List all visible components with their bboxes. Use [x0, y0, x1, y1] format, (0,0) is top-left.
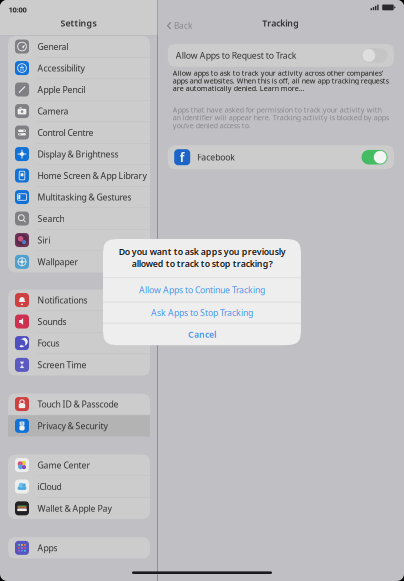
staticText: Screen Time — [37, 359, 86, 371]
staticText: Accessibility — [37, 62, 84, 74]
button[interactable]: Screen Time — [8, 354, 150, 376]
button[interactable]: Ask Apps to Stop Tracking — [103, 302, 301, 323]
staticText: Display & Brightness — [37, 148, 118, 160]
staticText: Back — [174, 20, 192, 31]
staticText: Notifications — [37, 294, 87, 306]
staticText: Siri — [37, 234, 50, 246]
staticText: Home Screen & App Library — [37, 170, 146, 181]
staticText: Control Centre — [37, 127, 93, 138]
staticText: Cancel — [188, 328, 216, 340]
button[interactable]: Search — [8, 208, 150, 230]
staticText: Tracking — [262, 17, 299, 29]
button[interactable]: Multitasking & Gestures — [8, 187, 150, 208]
staticText: Search — [37, 213, 64, 224]
button[interactable]: Sounds — [8, 311, 150, 333]
button[interactable]: Accessibility — [8, 58, 150, 79]
staticText: General — [37, 41, 68, 52]
staticText: Allow apps to ask to track your activity… — [173, 68, 389, 93]
staticText: Wallet & Apple Pay — [37, 502, 111, 514]
staticText: Privacy & Security — [37, 420, 107, 432]
staticText: Facebook — [197, 151, 235, 163]
button[interactable]: Apple Pencil — [8, 79, 150, 101]
button[interactable]: Back — [158, 16, 192, 35]
staticText: Game Center — [37, 459, 90, 471]
staticText: Camera — [37, 105, 68, 117]
button[interactable]: Notifications — [8, 290, 150, 311]
button[interactable]: Game Center — [8, 455, 150, 476]
staticText: Ask Apps to Stop Tracking — [151, 307, 253, 318]
button[interactable]: Cancel — [103, 323, 301, 345]
staticText: Apps that have asked for permission to t… — [173, 105, 389, 130]
button[interactable]: Siri — [8, 230, 150, 251]
button[interactable]: Allow Apps to Continue Tracking — [103, 278, 301, 302]
button[interactable]: Display & Brightness — [8, 144, 150, 165]
button[interactable]: Apps — [8, 537, 150, 559]
button[interactable]: Home Screen & App Library — [8, 165, 150, 187]
button[interactable]: Toggle on — [361, 150, 387, 164]
staticText: Allow Apps to Request to Track — [176, 49, 297, 61]
staticText: Apps — [37, 542, 57, 554]
button[interactable]: Control Centre — [8, 122, 150, 144]
staticText: Apple Pencil — [37, 84, 85, 95]
button[interactable]: Privacy & Security — [8, 415, 150, 437]
staticText: Do you want to ask apps you previously a… — [118, 245, 285, 269]
staticText: 10:00 — [8, 4, 26, 15]
button[interactable]: Touch ID & Passcode — [8, 394, 150, 415]
staticText: Settings — [60, 17, 96, 29]
staticText: Focus — [37, 337, 59, 349]
staticText: iCloud — [37, 481, 61, 492]
button[interactable]: Toggle off — [361, 48, 387, 63]
button[interactable]: Wallet & Apple Pay — [8, 498, 150, 519]
button[interactable]: General — [8, 36, 150, 58]
button[interactable]: iCloud — [8, 476, 150, 498]
staticText: Allow Apps to Continue Tracking — [139, 284, 265, 296]
button[interactable]: Wallpaper — [8, 251, 150, 273]
staticText: Multitasking & Gestures — [37, 191, 131, 203]
button[interactable]: Focus — [8, 333, 150, 354]
staticText: f — [180, 149, 185, 165]
staticText: Sounds — [37, 316, 66, 327]
staticText: Wallpaper — [37, 256, 78, 268]
staticText: Touch ID & Passcode — [37, 398, 118, 410]
button[interactable]: Camera — [8, 101, 150, 122]
